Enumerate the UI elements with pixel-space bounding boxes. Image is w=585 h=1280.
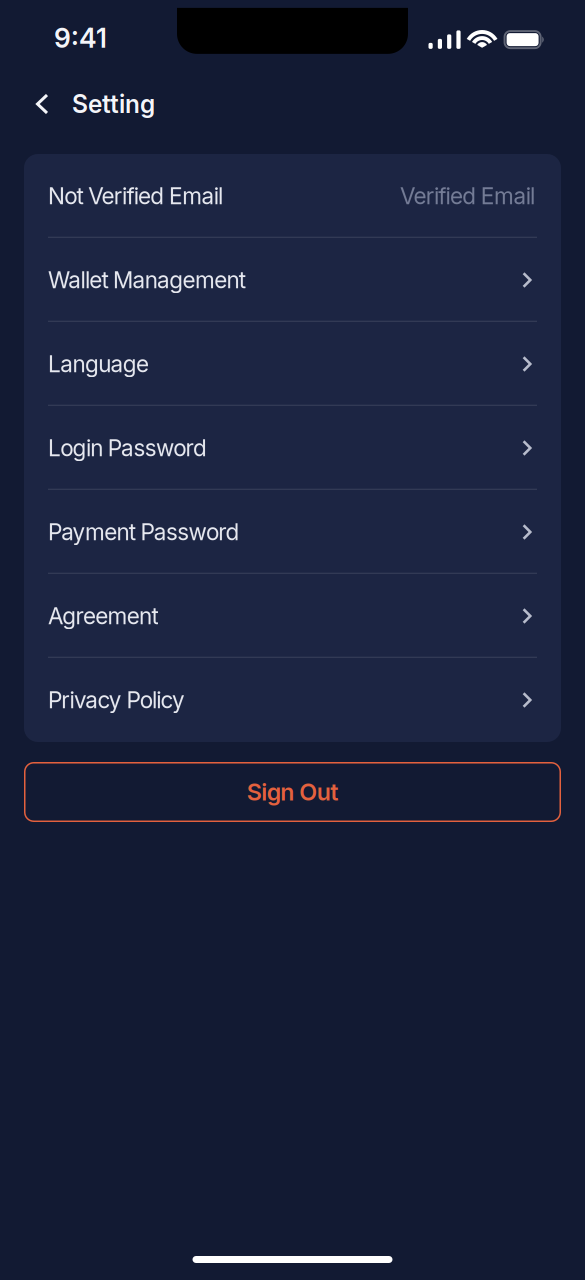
staticText: Language	[48, 350, 149, 378]
staticText: Verified Email	[400, 182, 535, 210]
staticText: Sign Out	[247, 778, 338, 806]
staticText: Wallet Management	[48, 266, 246, 294]
button[interactable]: Agreement	[24, 574, 561, 658]
staticText: 9:41	[54, 22, 107, 54]
staticText: Payment Password	[48, 518, 239, 546]
staticText: Login Password	[48, 434, 207, 462]
button[interactable]: Language	[24, 322, 561, 406]
button[interactable]: Sign Out	[24, 762, 561, 822]
button[interactable]: Privacy Policy	[24, 658, 561, 742]
button[interactable]: Login Password	[24, 406, 561, 490]
staticText: Setting	[72, 89, 155, 119]
staticText: Privacy Policy	[48, 686, 185, 714]
staticText: Agreement	[48, 602, 158, 630]
staticText: Not Verified Email	[48, 182, 223, 210]
button[interactable]: Payment Password	[24, 490, 561, 574]
button[interactable]: Wallet Management	[24, 238, 561, 322]
button[interactable]: Back	[0, 93, 59, 114]
